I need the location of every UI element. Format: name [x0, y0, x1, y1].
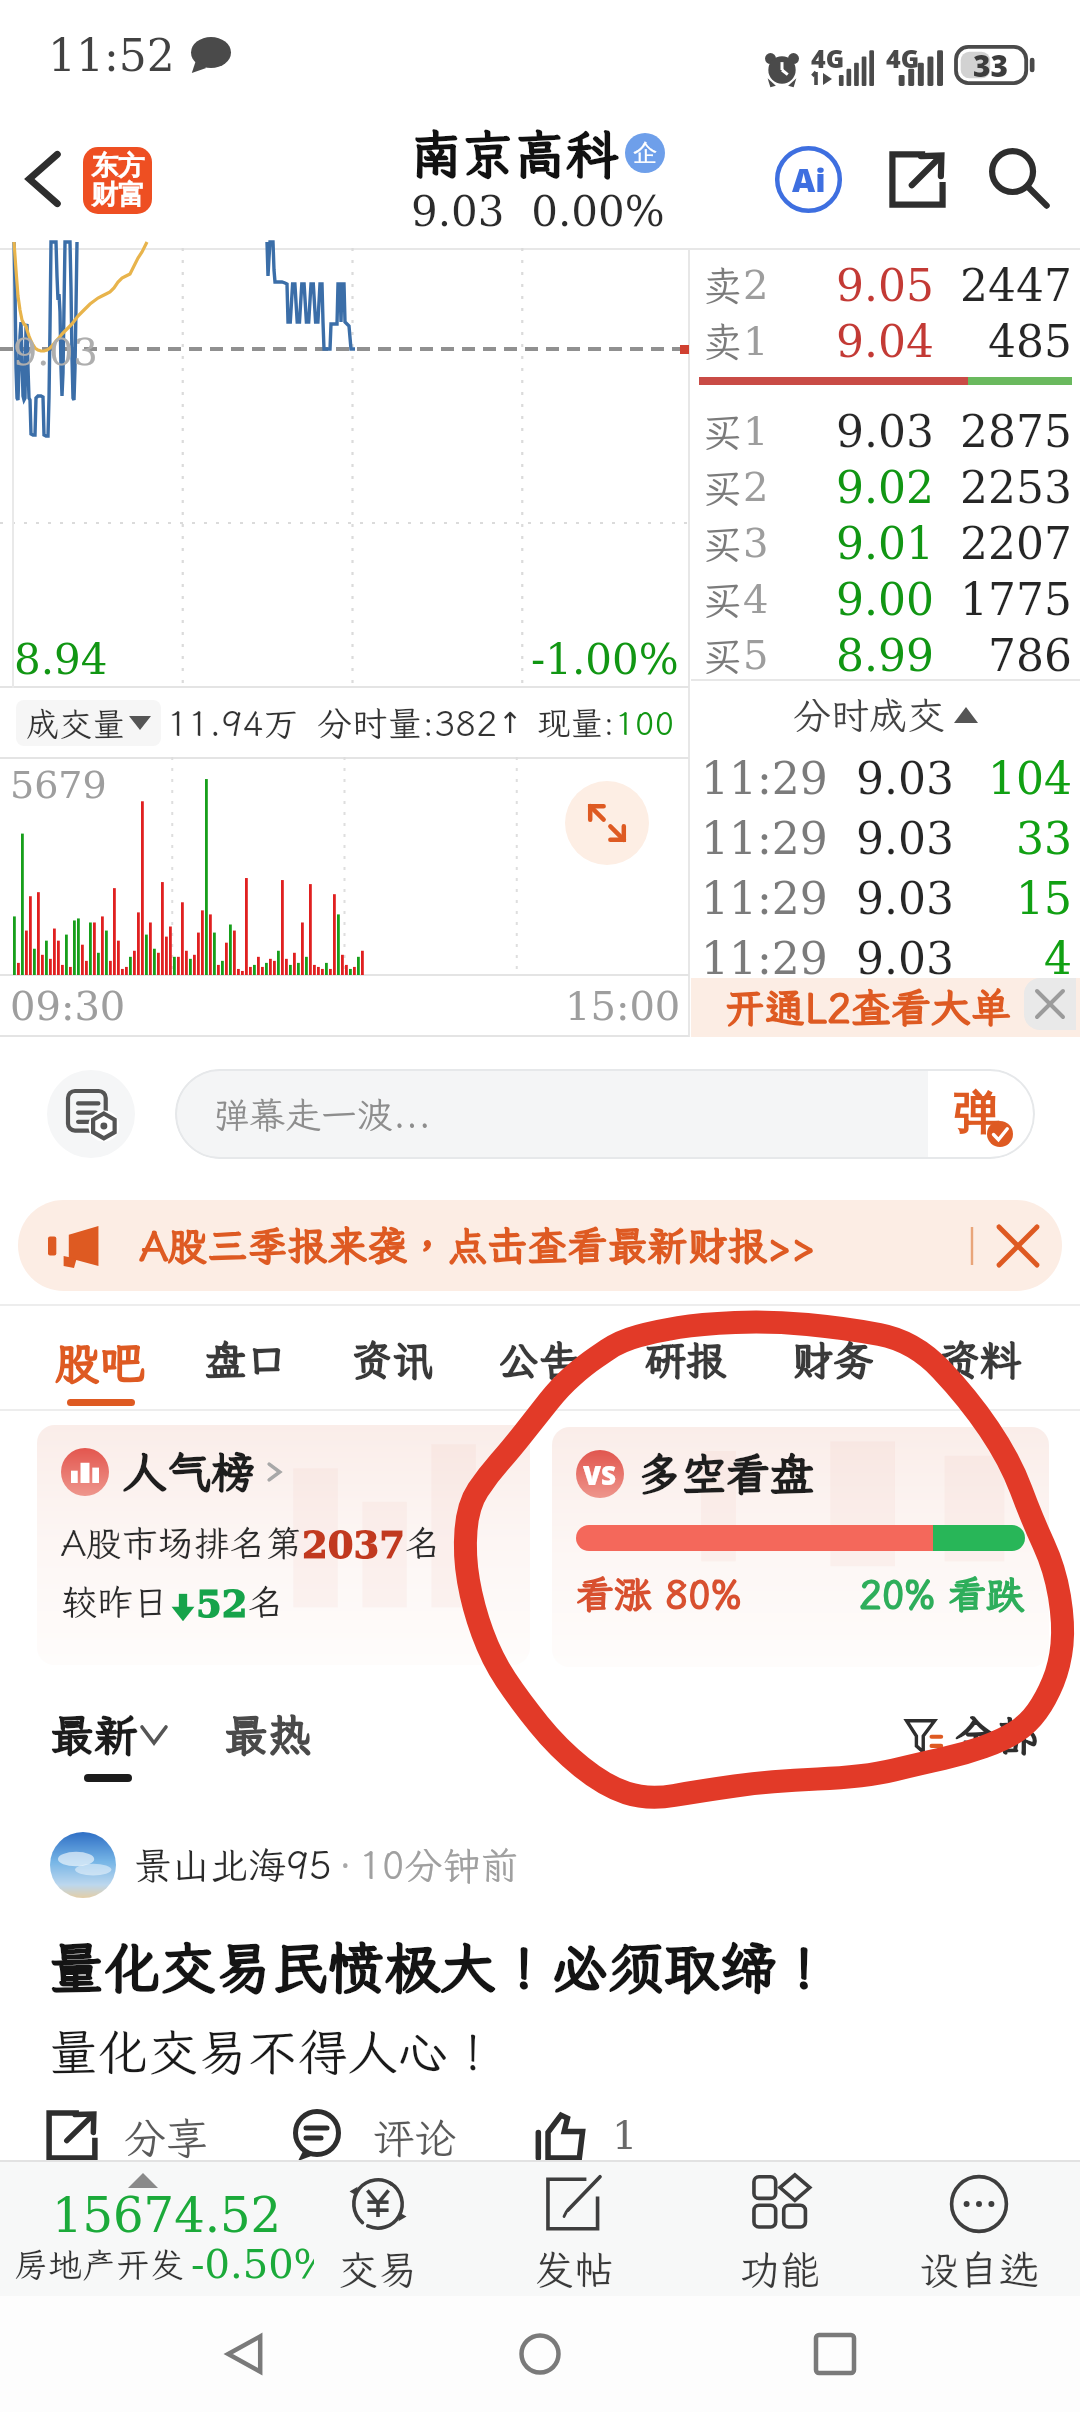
button[interactable]: Share [867, 110, 967, 248]
staticText: 2037 [302, 1523, 405, 1566]
staticText: 9.03 [856, 873, 954, 924]
button[interactable]: 11:29 [701, 928, 1072, 988]
staticText: 发帖 [534, 2243, 614, 2296]
button[interactable]: 11:29 [701, 808, 1072, 868]
button[interactable]: Dismiss notice [974, 1200, 1062, 1291]
staticText: -0.50% [191, 2241, 314, 2288]
staticText: 11:52 [48, 30, 175, 81]
button[interactable]: 资讯 [319, 1307, 465, 1412]
staticText: 全部 [955, 1708, 1040, 1763]
staticText: 名 [405, 1519, 442, 1566]
button[interactable]: 景山北海95 [0, 1800, 1080, 2161]
button[interactable]: 评论 [292, 2110, 457, 2161]
button[interactable]: 1 [534, 2110, 638, 2161]
button[interactable]: AI assistant [758, 110, 858, 248]
staticText: 100 [615, 701, 675, 744]
button[interactable]: 人气榜 [37, 1425, 530, 1665]
staticText: 3 [743, 520, 769, 567]
button[interactable]: 股吧 [27, 1307, 173, 1412]
staticText: 2 [743, 464, 769, 511]
staticText: · [332, 1842, 359, 1888]
staticText: 分时成交 [793, 690, 946, 740]
button[interactable]: A股三季报来袭，点击查看最新财报>> [18, 1200, 1062, 1291]
staticText: 买 [703, 573, 743, 626]
staticText: 较昨日 [61, 1578, 170, 1625]
staticText: 房地产开发 [14, 2242, 184, 2287]
staticText: 104 [988, 753, 1072, 804]
staticText: 9.03 [856, 753, 954, 804]
staticText: 15:00 [565, 983, 681, 1030]
staticText: A股市场排名第 [61, 1519, 302, 1566]
button[interactable]: Back [200, 2309, 290, 2399]
button[interactable]: 弹 [928, 1069, 1035, 1159]
staticText: 2447 [960, 260, 1072, 311]
staticText: 财务 [792, 1333, 874, 1387]
button[interactable]: 最新 [50, 1706, 166, 1782]
staticText: 最新 [50, 1706, 138, 1764]
button[interactable]: 交易 [288, 2161, 468, 2296]
button[interactable]: 最热 [224, 1706, 312, 1764]
button[interactable]: Recent apps [790, 2309, 880, 2399]
button[interactable]: 卖 [703, 257, 1072, 313]
button[interactable]: 买 [703, 515, 1072, 571]
button[interactable]: Home [495, 2309, 585, 2399]
button[interactable]: Close [1024, 978, 1076, 1030]
button[interactable]: East Money [83, 147, 152, 214]
staticText: 盘口 [205, 1333, 287, 1387]
button[interactable]: 盘口 [173, 1307, 319, 1412]
button[interactable]: 公告 [465, 1307, 612, 1412]
staticText: 评论 [372, 2110, 457, 2161]
button[interactable]: 买 [703, 627, 1072, 683]
staticText: 4 [743, 576, 769, 623]
button[interactable]: VS [552, 1427, 1049, 1667]
staticText: 买 [703, 405, 743, 458]
staticText: 量化交易民愤极大！必须取缔！ [48, 1930, 832, 2004]
staticText: 11.94万 [167, 700, 299, 746]
staticText: 企 [633, 138, 657, 168]
button[interactable]: 功能 [690, 2161, 870, 2296]
staticText: 11:29 [701, 873, 828, 924]
staticText: 485 [988, 316, 1072, 367]
button[interactable]: 11:29 [701, 868, 1072, 928]
button[interactable]: 分时成交 [691, 684, 1080, 746]
staticText: 2207 [960, 518, 1072, 569]
button[interactable]: 买 [703, 571, 1072, 627]
staticText: 交易 [338, 2243, 418, 2296]
button[interactable]: 设自选 [889, 2161, 1069, 2296]
button[interactable]: 全部 [905, 1708, 1040, 1763]
staticText: A股三季报来袭，点击查看最新财报>> [140, 1219, 816, 1272]
button[interactable]: 分享 [46, 2110, 209, 2161]
button[interactable]: 卖 [703, 313, 1072, 369]
button[interactable]: 11:29 [701, 748, 1072, 808]
staticText: 2 [743, 262, 769, 309]
staticText: 09:30 [10, 983, 126, 1030]
staticText: 11:29 [701, 933, 828, 984]
button[interactable]: 成交量 [26, 700, 151, 746]
staticText: 4G [811, 41, 845, 75]
button[interactable]: Back [5, 110, 81, 248]
button[interactable]: Fullscreen chart [565, 781, 649, 865]
button[interactable]: 开通L2查看大单 [691, 978, 1080, 1037]
staticText: 15 [1016, 873, 1072, 924]
staticText: 东方 财富 [91, 149, 145, 212]
staticText: 买 [703, 629, 743, 682]
staticText: 名 [248, 1578, 285, 1625]
staticText: 开通L2查看大单 [725, 981, 1011, 1034]
staticText: 人气榜 [123, 1443, 255, 1501]
staticText: 9.03 [856, 813, 954, 864]
button[interactable]: 资料 [906, 1307, 1053, 1412]
button[interactable]: Search [970, 110, 1070, 248]
button[interactable]: 买 [703, 403, 1072, 459]
button[interactable]: 发帖 [484, 2161, 664, 2296]
staticText: -1.00% [531, 635, 679, 684]
button[interactable]: 财务 [759, 1307, 906, 1412]
button[interactable]: Notes [47, 1070, 135, 1158]
staticText: 33 [1016, 813, 1072, 864]
button[interactable]: 研报 [612, 1307, 759, 1412]
staticText: 8.94 [14, 635, 108, 684]
staticText: 卖 [703, 259, 743, 312]
button[interactable]: 买 [703, 459, 1072, 515]
staticText: 10分钟前 [359, 1840, 519, 1890]
button[interactable]: 弹幕走一波... [175, 1069, 1035, 1159]
button[interactable]: 15674.52 [0, 2161, 320, 2296]
